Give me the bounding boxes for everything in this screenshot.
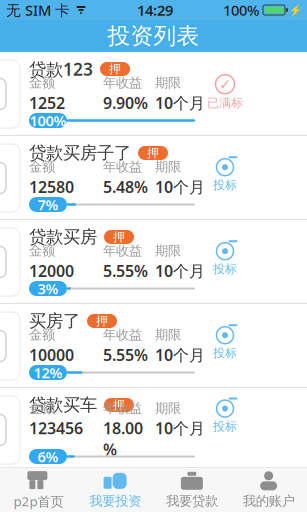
staticText: 金额 — [29, 243, 55, 259]
staticText: 金额 — [29, 75, 55, 91]
staticText: 123456 — [29, 417, 83, 439]
staticText: 10个月 — [155, 417, 205, 439]
staticText: 年收益 — [103, 327, 142, 343]
staticText: 投标 — [213, 178, 237, 192]
staticText: 投标 — [213, 346, 237, 360]
staticText: 期限 — [155, 75, 181, 91]
button[interactable]: 已满标 — [205, 75, 245, 110]
staticText: 我的账户 — [243, 493, 295, 509]
staticText: 5.55% — [103, 344, 148, 365]
staticText: 押 — [113, 398, 125, 412]
staticText: 12580 — [29, 176, 74, 197]
staticText: 期限 — [155, 159, 181, 175]
button[interactable]: 买房了 — [0, 304, 307, 387]
button[interactable]: p2p首页 — [0, 468, 77, 512]
button[interactable]: 贷款买车 — [0, 388, 307, 471]
staticText: 期限 — [155, 243, 181, 259]
staticText: 5.48% — [103, 176, 148, 197]
staticText: 押 — [147, 146, 159, 160]
staticText: 我要贷款 — [166, 493, 218, 509]
staticText: ⚡ — [289, 4, 302, 16]
staticText: 3% — [37, 279, 58, 298]
staticText: 投资列表 — [107, 22, 199, 50]
staticText: 年收益 — [103, 159, 142, 175]
staticText: 7% — [37, 195, 58, 214]
staticText: 10个月 — [155, 260, 205, 281]
staticText: 1252 — [29, 92, 65, 113]
button[interactable]: 投标 — [205, 243, 245, 276]
staticText: 年收益 — [103, 400, 142, 416]
staticText: 14:29 — [137, 0, 173, 20]
staticText: 100% — [223, 0, 259, 20]
button[interactable]: 我要投资 — [77, 468, 154, 512]
button[interactable]: 贷款买房子了 — [0, 136, 307, 219]
staticText: 12% — [33, 363, 62, 382]
staticText: 押 — [96, 314, 108, 328]
button[interactable]: 贷款买房 — [0, 220, 307, 303]
staticText: 18.00% — [103, 417, 143, 460]
staticText: 5.55% — [103, 260, 148, 281]
staticText: p2p首页 — [13, 492, 63, 510]
staticText: 贷款买房 — [29, 226, 97, 248]
button[interactable]: 投标 — [205, 159, 245, 192]
staticText: 押 — [109, 62, 121, 76]
button[interactable]: 我的账户 — [230, 468, 307, 512]
staticText: 贷款买车 — [29, 394, 97, 416]
staticText: 我要投资 — [89, 493, 141, 509]
staticText: 买房了 — [29, 310, 80, 332]
button[interactable]: 贷款123 — [0, 52, 307, 135]
button[interactable]: 投标 — [205, 327, 245, 360]
staticText: 年收益 — [103, 75, 142, 91]
staticText: 10个月 — [155, 176, 205, 197]
staticText: 10个月 — [155, 344, 205, 365]
button[interactable]: 我要贷款 — [153, 468, 230, 512]
button[interactable]: 投标 — [205, 400, 245, 434]
staticText: 押 — [113, 230, 125, 244]
staticText: 10000 — [29, 344, 74, 365]
staticText: 6% — [37, 447, 58, 466]
staticText: ✓ — [219, 76, 231, 92]
staticText: 无 SIM 卡 — [6, 0, 70, 20]
staticText: 金额 — [29, 400, 55, 416]
staticText: 9.90% — [103, 92, 148, 113]
staticText: 100% — [29, 111, 66, 130]
staticText: 已满标 — [207, 96, 243, 110]
staticText: 期限 — [155, 400, 181, 416]
staticText: 投标 — [213, 419, 237, 434]
staticText: 10个月 — [155, 92, 205, 113]
staticText: 贷款123 — [29, 57, 93, 80]
staticText: 年收益 — [103, 243, 142, 259]
staticText: 金额 — [29, 159, 55, 175]
staticText: 贷款买房子了 — [29, 142, 131, 164]
staticText: 投标 — [213, 262, 237, 276]
staticText: 期限 — [155, 327, 181, 343]
staticText: 12000 — [29, 260, 74, 281]
staticText: 金额 — [29, 327, 55, 343]
